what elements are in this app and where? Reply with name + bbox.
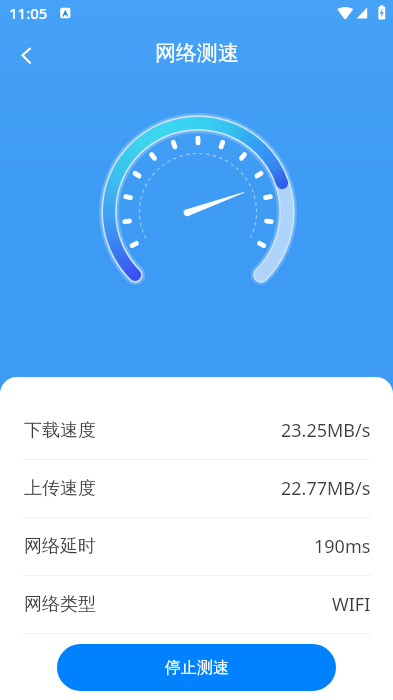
staticText: 23.25MB/s [281,418,371,443]
button[interactable]: 网络类型 [0,576,393,633]
button[interactable]: 下载速度 [0,402,393,459]
staticText: WIFI [332,592,371,617]
button[interactable]: 停止测速 [57,644,336,691]
button[interactable]: 网络延时 [0,518,393,575]
staticText: 上传速度 [24,477,96,500]
staticText: 停止测速 [165,658,229,678]
staticText: 网络测速 [155,40,239,66]
button[interactable]: Back [0,29,46,75]
staticText: 22.77MB/s [281,476,371,501]
button[interactable]: 上传速度 [0,460,393,517]
staticText: 网络类型 [24,593,96,616]
staticText: 下载速度 [24,419,96,442]
staticText: 网络延时 [24,535,96,558]
staticText: 11:05 [9,3,48,23]
staticText: 190ms [314,534,371,559]
